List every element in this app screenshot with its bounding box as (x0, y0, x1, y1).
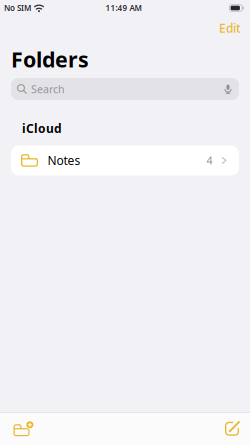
staticText: 11:49 AM (105, 3, 141, 13)
button[interactable]: New Note (219, 415, 245, 443)
staticText: Edit (219, 20, 241, 36)
staticText: Folders (11, 45, 89, 73)
staticText: iCloud (22, 120, 62, 136)
button[interactable]: Notes (11, 145, 239, 175)
button[interactable]: Search (11, 78, 239, 100)
button[interactable]: New Folder (7, 414, 39, 443)
staticText: 4 (206, 153, 212, 168)
staticText: Notes (47, 152, 80, 168)
button[interactable]: Edit (214, 17, 246, 39)
staticText: Search (31, 82, 65, 96)
staticText: No SIM (4, 3, 31, 13)
